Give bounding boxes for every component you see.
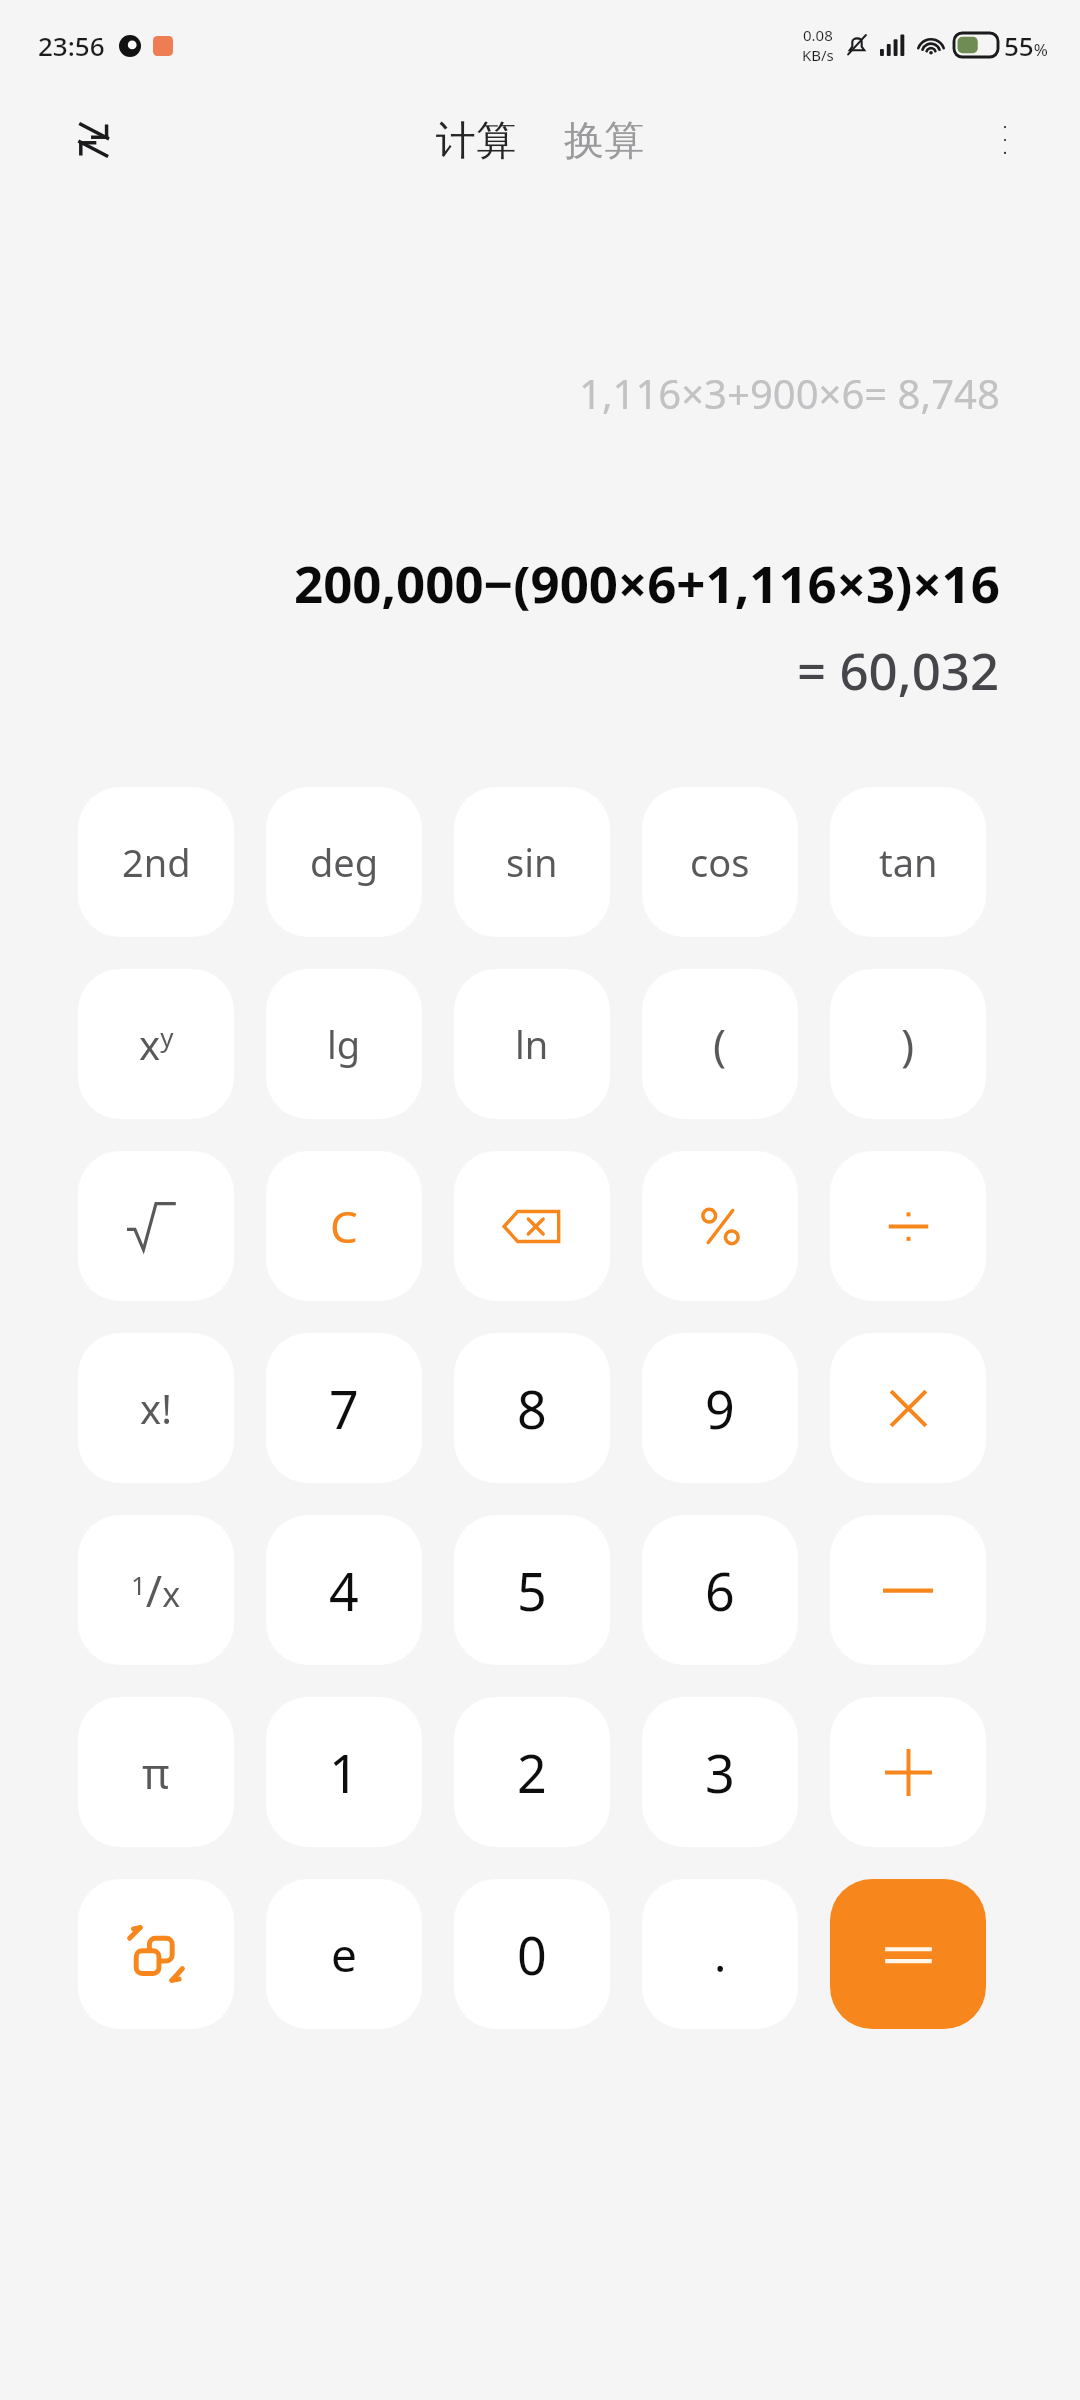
staticText: 55%: [1004, 28, 1048, 63]
button[interactable]: Collapse: [62, 112, 118, 168]
staticText: 1: [329, 1737, 359, 1808]
button[interactable]: e: [266, 1879, 422, 2029]
staticText: 4: [329, 1555, 359, 1626]
staticText: .: [714, 1923, 727, 1986]
staticText: 0.08: [803, 25, 833, 45]
button[interactable]: Minus: [830, 1515, 986, 1665]
button[interactable]: 2nd: [78, 787, 234, 937]
button[interactable]: (: [642, 969, 798, 1119]
button[interactable]: ): [830, 969, 986, 1119]
staticText: 计算: [436, 115, 516, 165]
staticText: C: [330, 1196, 358, 1256]
staticText: 200,000−(900×6+1,116×3)×16: [294, 548, 1000, 617]
staticText: 8: [517, 1373, 547, 1444]
button[interactable]: cos: [642, 787, 798, 937]
button[interactable]: sin: [454, 787, 610, 937]
staticText: lg: [327, 1018, 361, 1070]
button[interactable]: 7: [266, 1333, 422, 1483]
button[interactable]: x!: [78, 1333, 234, 1483]
button[interactable]: Divide: [830, 1151, 986, 1301]
staticText: e: [331, 1923, 357, 1986]
staticText: π: [142, 1744, 170, 1801]
button[interactable]: 计算: [426, 109, 526, 171]
button[interactable]: Square root: [78, 1151, 234, 1301]
button[interactable]: 1/x: [78, 1515, 234, 1665]
staticText: = 60,032: [797, 635, 1000, 704]
button[interactable]: More options: [978, 113, 1032, 167]
button[interactable]: 4: [266, 1515, 422, 1665]
staticText: 0: [517, 1919, 547, 1990]
button[interactable]: xy: [78, 969, 234, 1119]
button[interactable]: 9: [642, 1333, 798, 1483]
staticText: sin: [506, 836, 558, 888]
button[interactable]: 5: [454, 1515, 610, 1665]
button[interactable]: 8: [454, 1333, 610, 1483]
button[interactable]: 3: [642, 1697, 798, 1847]
staticText: 换算: [564, 115, 644, 165]
staticText: x!: [140, 1381, 172, 1435]
button[interactable]: C: [266, 1151, 422, 1301]
staticText: 23:56: [38, 28, 105, 63]
button[interactable]: .: [642, 1879, 798, 2029]
button[interactable]: lg: [266, 969, 422, 1119]
button[interactable]: deg: [266, 787, 422, 937]
staticText: 1/x: [131, 1560, 181, 1620]
button[interactable]: 2: [454, 1697, 610, 1847]
staticText: 9: [705, 1373, 735, 1444]
button[interactable]: 6: [642, 1515, 798, 1665]
button[interactable]: 0: [454, 1879, 610, 2029]
button[interactable]: Equals: [830, 1879, 986, 2029]
staticText: xy: [139, 1017, 174, 1071]
staticText: ): [901, 1014, 915, 1074]
button[interactable]: π: [78, 1697, 234, 1847]
button[interactable]: Plus: [830, 1697, 986, 1847]
staticText: KB/s: [802, 45, 834, 65]
staticText: ln: [515, 1018, 549, 1070]
staticText: 2nd: [122, 836, 191, 888]
staticText: 2: [517, 1737, 547, 1808]
button[interactable]: Multiply: [830, 1333, 986, 1483]
staticText: 6: [705, 1555, 735, 1626]
button[interactable]: tan: [830, 787, 986, 937]
button[interactable]: Unit converter: [78, 1879, 234, 2029]
staticText: cos: [690, 836, 750, 888]
staticText: tan: [879, 836, 938, 888]
button[interactable]: 1: [266, 1697, 422, 1847]
staticText: 7: [329, 1373, 359, 1444]
button[interactable]: Percent: [642, 1151, 798, 1301]
staticText: deg: [310, 836, 379, 888]
staticText: 3: [705, 1737, 735, 1808]
staticText: 5: [517, 1555, 547, 1626]
button[interactable]: ln: [454, 969, 610, 1119]
staticText: (: [713, 1014, 727, 1074]
button[interactable]: Backspace: [454, 1151, 610, 1301]
button[interactable]: 换算: [554, 109, 654, 171]
staticText: 1,116×3+900×6= 8,748: [579, 366, 1000, 420]
